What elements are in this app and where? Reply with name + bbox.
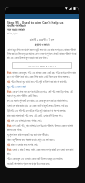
staticText: শক্তির একক জুল এবং ক্ষমতার একক ওয়াট হিস… <box>7 157 77 161</box>
staticText: সূত্রগুলো মনে রাখলে সহজেই অঙ্ক করা যাবে … <box>7 133 77 137</box>
staticText: কাজ করার সামর্থ্যকেই শক্তি বলে। এটি একটি… <box>7 114 77 118</box>
staticText: উত্তরঃ এক রূপ থেকে অন্য রূপে রূপান্তরিত … <box>7 90 77 98</box>
staticText: কোনো বস্তুর উপর বল প্রয়োগ করলে বস্তুটি … <box>7 48 77 60</box>
staticText: W = F × s and P = W / t <box>13 64 71 67</box>
staticText: অধ্যায়টি ভালোভাবে পড়লে সব প্রশ্নের উত্… <box>7 162 77 166</box>
staticText: সূত্রঃ শক্তি = বল × সরণ <box>7 85 77 89</box>
staticText: প্রশ্নমালা ও সমাধান <box>7 43 77 47</box>
staticText: প্রশ্নঃ কাজ ও ক্ষমতার মধ্যে সম্পর্ক লেখ। <box>7 143 77 147</box>
staticText: উত্তরঃ কাজের একক জুল। শক্তি এবং কাজের এক… <box>7 71 77 79</box>
staticText: উত্তরঃ ক্ষমতা = কাজ / সময়। অর্থাৎ একক স… <box>7 148 77 156</box>
staticText: sin²θ + cos²θ = 1 হলে <box>7 38 77 42</box>
staticText: Step 95 - Used to aim Can't help us <box>7 20 77 24</box>
staticText: প্রশ্নঃ শক্তির নিত্যতা সূত্র ব্যাখ্যা কর… <box>7 80 77 84</box>
staticText: আরও অনুশীলনের জন্য পরবর্তী অধ্যায় দেখুন… <box>7 138 77 142</box>
staticText: স্থিতিশক্তি এবং গতিশক্তি হল যান্ত্রিক শক… <box>7 109 77 113</box>
staticText: উত্তরঃ তাপ একটি শক্তি, আর তাপমাত্রা হল উ… <box>7 124 77 132</box>
staticText: মাধ্যমিক পদার্থবিজ্ঞান নবম অধ্যায় সমাধা… <box>7 24 77 32</box>
staticText: প্রশ্নঃ তাপ এবং তাপমাত্রার মধ্যে পার্থক্… <box>7 119 77 123</box>
staticText: বল এবং সরণের গুণফলই হল কাজ। এর একক জুল ব… <box>7 99 77 103</box>
staticText: মার্চ ২৫, ২০২৩ <box>7 32 77 35</box>
staticText: ক্ষমতা হল কাজ করার হার। এর একক ওয়াট বা … <box>7 104 77 108</box>
